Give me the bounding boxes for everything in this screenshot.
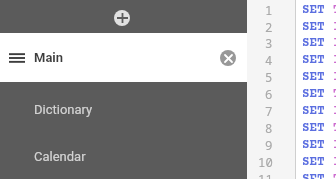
staticText: ITEM	[333, 53, 336, 67]
staticText: 7	[265, 103, 273, 120]
staticText: 9	[265, 137, 273, 154]
staticText: ITEM	[333, 155, 336, 169]
staticText: 3	[265, 35, 273, 52]
button[interactable]: Close	[214, 44, 242, 72]
staticText: TEXT	[333, 121, 336, 135]
staticText: 1	[265, 2, 273, 19]
staticText: ITEM	[333, 20, 336, 34]
staticText: ITEM	[333, 104, 336, 118]
staticText: Calendar	[34, 149, 86, 164]
staticText: Dictionary	[34, 102, 93, 117]
staticText: SET	[302, 87, 333, 101]
button[interactable]: Open navigation menu	[0, 33, 34, 82]
staticText: SET	[302, 20, 333, 34]
button[interactable]: Calendar	[0, 133, 247, 179]
staticText: 6	[265, 86, 273, 103]
staticText: ITEM	[333, 138, 336, 152]
staticText: TEXT	[333, 172, 336, 179]
staticText: 10	[258, 154, 273, 171]
staticText: TEXT	[333, 87, 336, 101]
staticText: Main	[34, 50, 64, 65]
staticText: 4	[265, 52, 273, 69]
staticText: 8	[265, 120, 273, 137]
staticText: 11	[258, 171, 273, 179]
staticText: SET	[302, 53, 333, 67]
staticText: SET	[302, 3, 333, 17]
staticText: 2	[265, 19, 273, 36]
staticText: SET	[302, 104, 333, 118]
staticText: SET	[302, 70, 333, 84]
staticText: SET	[302, 155, 333, 169]
staticText: SET	[302, 172, 333, 179]
staticText: SET	[302, 36, 333, 50]
staticText: TEXT	[333, 3, 336, 17]
staticText: ITEM	[333, 70, 336, 84]
staticText: SET	[302, 121, 333, 135]
staticText: SET	[302, 138, 333, 152]
button[interactable]: Add	[114, 10, 130, 26]
staticText: ITEM	[333, 36, 336, 50]
staticText: 5	[265, 69, 273, 86]
button[interactable]: Dictionary	[0, 85, 247, 133]
